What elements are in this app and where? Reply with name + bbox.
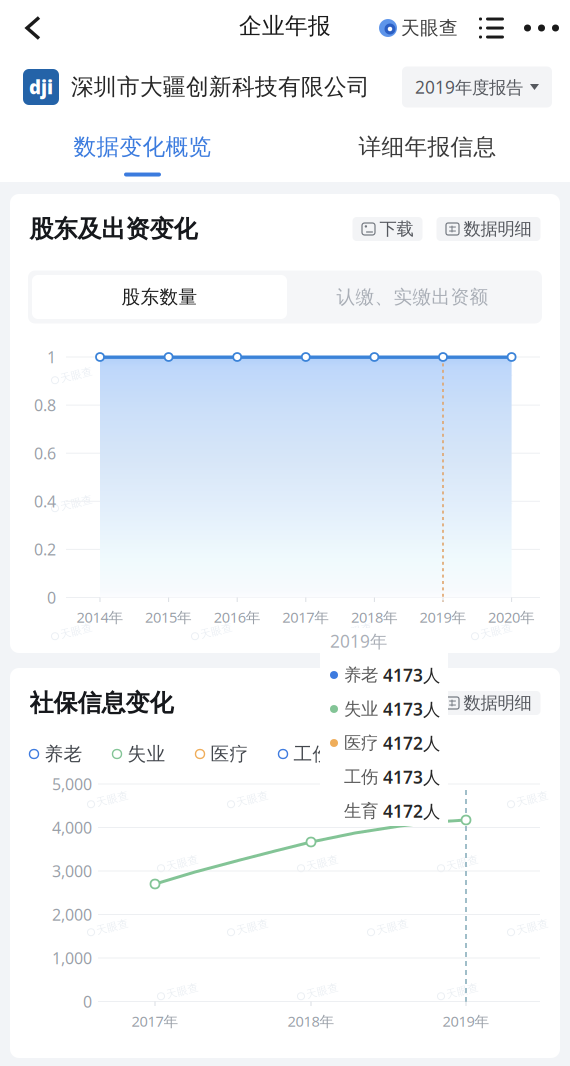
- staticText: 2019年: [419, 607, 466, 627]
- staticText: 股东及出资变化: [29, 214, 197, 244]
- button[interactable]: 认缴、实缴出资额: [287, 275, 538, 319]
- button[interactable]: 更多: [524, 24, 559, 31]
- button[interactable]: 详细年报信息: [285, 118, 570, 182]
- staticText: dji: [29, 75, 53, 99]
- button[interactable]: 列表: [479, 17, 504, 38]
- staticText: 医疗: [210, 742, 248, 765]
- staticText: 4172人: [383, 799, 440, 822]
- staticText: 4173人: [383, 663, 440, 686]
- staticText: 生育: [344, 800, 378, 822]
- button[interactable]: 2019年度报告: [402, 66, 552, 107]
- staticText: 4,000: [52, 817, 92, 838]
- button[interactable]: 数据明细: [436, 217, 540, 241]
- staticText: 养老: [344, 664, 378, 686]
- staticText: 股东数量: [121, 285, 197, 308]
- staticText: 天眼查: [446, 985, 479, 998]
- staticText: 2020年: [488, 607, 535, 627]
- staticText: 4173人: [383, 697, 440, 720]
- staticText: 下载: [379, 218, 413, 240]
- staticText: 2017年: [282, 607, 329, 627]
- staticText: 天眼查: [340, 625, 373, 638]
- staticText: 天眼查: [446, 857, 479, 870]
- staticText: 天眼查: [480, 497, 513, 510]
- button[interactable]: 返回: [0, 0, 63, 55]
- staticText: 天眼查: [96, 793, 129, 806]
- staticText: 数据变化概览: [73, 133, 211, 161]
- staticText: 1,000: [52, 947, 92, 969]
- staticText: 天眼查: [376, 921, 409, 934]
- button[interactable]: 下载: [352, 217, 422, 241]
- staticText: 天眼查: [60, 369, 93, 382]
- staticText: 天眼查: [236, 793, 269, 806]
- staticText: 养老: [44, 742, 82, 765]
- staticText: 4172人: [383, 731, 440, 754]
- staticText: 数据明细: [463, 218, 531, 240]
- staticText: 数据明细: [463, 692, 531, 714]
- staticText: 2018年: [351, 607, 398, 627]
- staticText: 5,000: [52, 773, 92, 795]
- staticText: 医疗: [344, 732, 378, 754]
- staticText: 天眼查: [96, 921, 129, 934]
- staticText: 3,000: [52, 860, 92, 882]
- staticText: 2015年: [145, 607, 192, 627]
- staticText: 天眼查: [166, 857, 199, 870]
- staticText: 天眼查: [236, 921, 269, 934]
- staticText: 天眼查: [200, 625, 233, 638]
- staticText: 天眼查: [376, 793, 409, 806]
- staticText: 2017年: [131, 1011, 178, 1031]
- staticText: 深圳市大疆创新科技有限公司: [71, 73, 370, 101]
- staticText: 工伤: [293, 742, 331, 765]
- button[interactable]: 股东数量: [32, 275, 287, 319]
- staticText: 2019年: [330, 629, 387, 652]
- staticText: 天眼查: [401, 16, 458, 39]
- staticText: 0.2: [34, 539, 56, 560]
- staticText: 0.8: [34, 394, 56, 416]
- staticText: 天眼查: [60, 625, 93, 638]
- staticText: 2019年度报告: [415, 75, 523, 98]
- staticText: 2014年: [76, 607, 123, 627]
- staticText: 1: [47, 346, 56, 368]
- staticText: 天眼查: [410, 433, 443, 446]
- staticText: 0: [47, 587, 56, 608]
- button[interactable]: 数据变化概览: [0, 118, 285, 182]
- staticText: 天眼查: [480, 369, 513, 382]
- staticText: 详细年报信息: [358, 133, 496, 161]
- staticText: 工伤: [344, 766, 378, 788]
- staticText: 4173人: [383, 765, 440, 788]
- staticText: 天眼查: [306, 985, 339, 998]
- staticText: 企业年报: [239, 12, 331, 40]
- staticText: 社保信息变化: [29, 688, 173, 718]
- staticText: 2,000: [52, 904, 92, 925]
- staticText: 2019年: [442, 1011, 489, 1031]
- staticText: 认缴、实缴出资额: [336, 285, 488, 308]
- staticText: 天眼查: [166, 985, 199, 998]
- staticText: 0: [83, 991, 92, 1012]
- staticText: 下载: [379, 692, 413, 714]
- staticText: 2016年: [214, 607, 261, 627]
- staticText: 天眼查: [480, 625, 513, 638]
- button[interactable]: 数据明细: [436, 691, 540, 715]
- staticText: 失业: [127, 742, 165, 765]
- staticText: 0.4: [34, 491, 56, 512]
- staticText: 2018年: [287, 1011, 334, 1031]
- staticText: 失业: [344, 698, 378, 720]
- staticText: 天眼查: [410, 561, 443, 574]
- staticText: 天眼查: [516, 921, 549, 934]
- staticText: 天眼查: [60, 497, 93, 510]
- staticText: 0.6: [34, 443, 56, 464]
- staticText: 天眼查: [306, 857, 339, 870]
- staticText: 天眼查: [516, 793, 549, 806]
- button[interactable]: 下载: [352, 691, 422, 715]
